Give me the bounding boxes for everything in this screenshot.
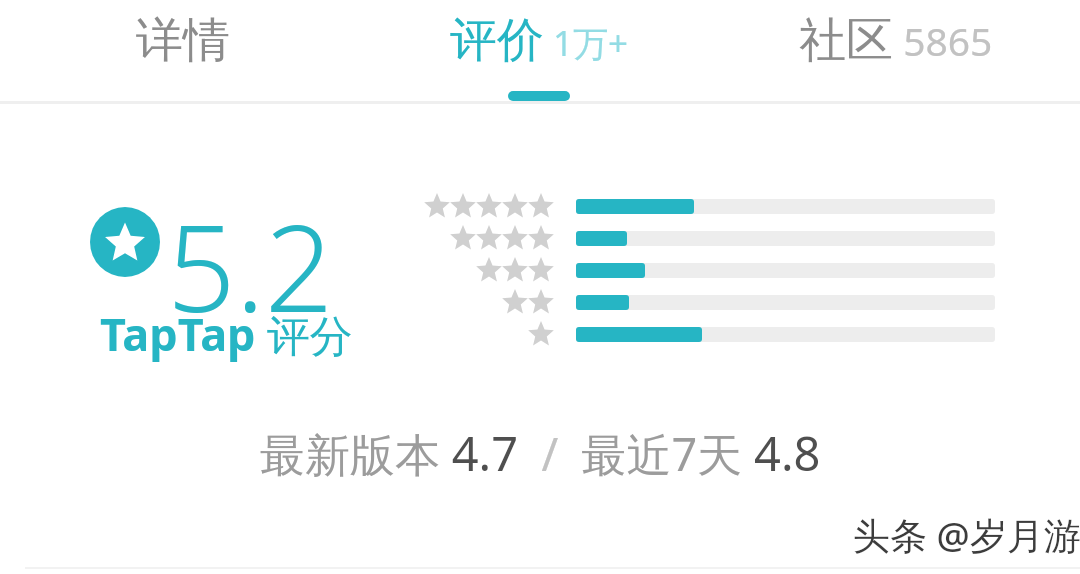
button[interactable]: 社区 5865: [762, 0, 1030, 100]
staticText: 评价 1万+: [450, 11, 629, 70]
staticText: 最新版本 4.7 / 最近7天 4.8: [260, 421, 821, 485]
other: 3 star ratings: [415, 256, 565, 285]
staticText: 5.2: [167, 184, 334, 347]
staticText: 社区 5865: [799, 11, 993, 70]
button[interactable]: 详情: [55, 0, 310, 100]
staticText: 详情: [136, 11, 230, 70]
other: 5 star ratings: [415, 192, 565, 221]
other: 4 star ratings: [415, 224, 565, 253]
button[interactable]: 评价 1万+: [400, 0, 678, 100]
staticText: TapTap 评分: [100, 303, 353, 364]
other: 1 star ratings: [415, 320, 565, 349]
other: 2 star ratings: [415, 288, 565, 317]
staticText: 头条 @岁月游戏: [853, 509, 1080, 560]
